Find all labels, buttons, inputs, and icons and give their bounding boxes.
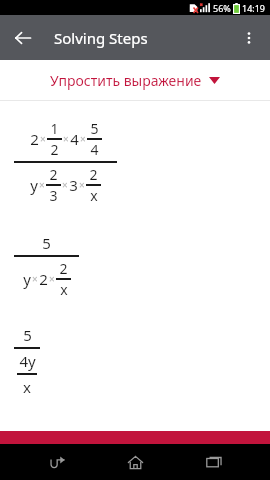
staticText: 56% [213,2,231,14]
staticText: 4y [19,351,36,371]
staticText: 2 [59,259,68,278]
button[interactable]: Back [6,21,40,55]
button[interactable]: Recent apps [192,444,236,480]
button[interactable]: Home [113,444,157,480]
staticText: 3 [69,175,78,195]
staticText: 5 [42,233,51,253]
staticText: 2 [89,165,98,184]
staticText: × [80,132,86,146]
staticText: 14:19 [242,2,266,14]
staticText: 2 [39,269,48,289]
button[interactable]: Back [35,444,79,480]
staticText: 3 [49,186,58,205]
staticText: y [23,269,31,289]
staticText: 2 [30,129,39,149]
staticText: × [49,272,55,286]
staticText: 2 [49,165,58,184]
button[interactable]: Упростить выражение [0,60,270,100]
staticText: 4 [70,129,79,149]
staticText: × [79,178,85,192]
staticText: 5 [23,325,32,345]
staticText: 5 [90,119,99,138]
staticText: Упростить выражение [50,71,202,90]
staticText: Solving Steps [54,28,148,48]
staticText: 2 [50,140,59,159]
staticText: x [23,377,31,397]
staticText: × [40,132,46,146]
staticText: y [30,175,38,195]
button[interactable]: More options [232,21,266,55]
staticText: x [90,186,98,205]
staticText: 1 [50,119,59,138]
staticText: × [39,178,45,192]
staticText: × [62,178,68,192]
staticText: × [32,272,38,286]
staticText: 4 [90,140,99,159]
staticText: x [60,280,68,299]
staticText: × [63,132,69,146]
